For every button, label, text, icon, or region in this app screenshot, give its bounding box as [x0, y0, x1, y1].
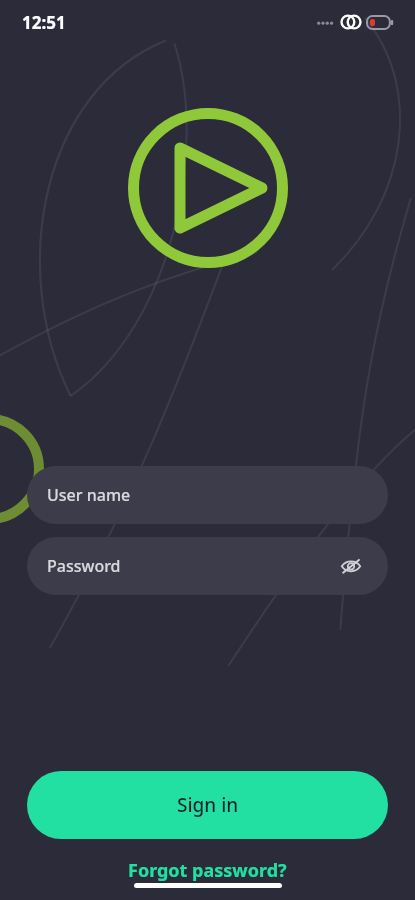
staticText: Forgot password?: [128, 858, 287, 883]
button[interactable]: Forgot password?: [27, 853, 388, 887]
staticText: Password: [47, 555, 121, 577]
staticText: User name: [47, 484, 131, 506]
button[interactable]: Sign in: [27, 771, 388, 839]
staticText: 12:51: [22, 11, 66, 34]
button[interactable]: Password: [27, 537, 388, 595]
button[interactable]: User name: [27, 466, 388, 524]
button[interactable]: Show password: [334, 549, 368, 583]
staticText: Sign in: [177, 792, 239, 818]
